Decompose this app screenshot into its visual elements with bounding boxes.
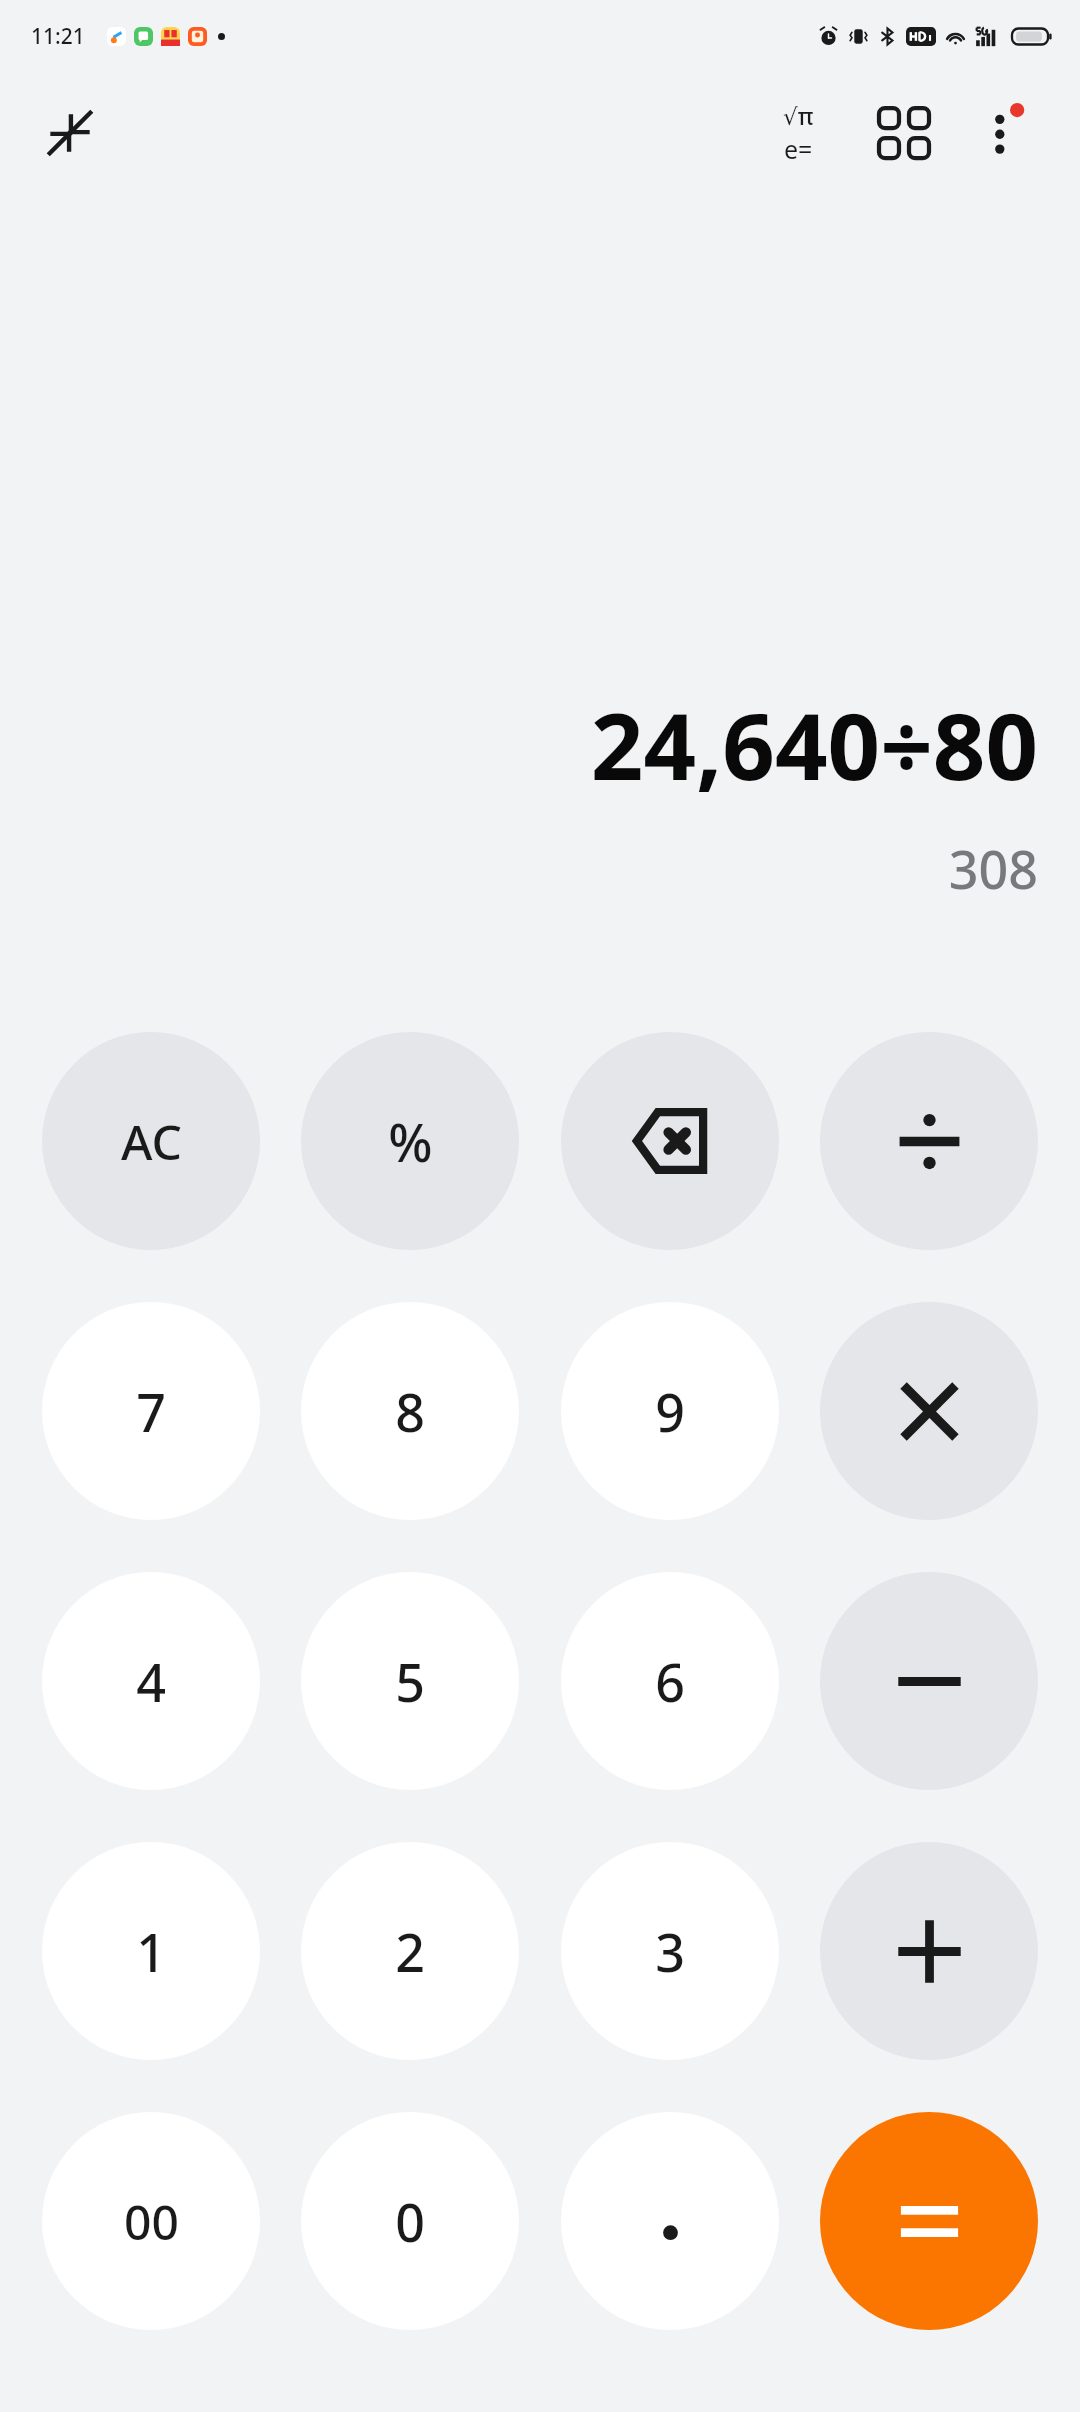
staticText: 11:21 <box>31 22 85 51</box>
staticText: e= <box>784 132 813 166</box>
staticText: √π <box>783 100 814 131</box>
staticText: 5 <box>395 1646 425 1717</box>
staticText: 3 <box>655 1916 685 1987</box>
button[interactable]: 4 <box>42 1572 260 1790</box>
button[interactable]: 5 <box>301 1572 519 1790</box>
button[interactable]: 2 <box>301 1842 519 2060</box>
button[interactable]: Subtract <box>820 1572 1038 1790</box>
button[interactable]: Divide <box>820 1032 1038 1250</box>
button[interactable]: 0 <box>301 2112 519 2330</box>
staticText: % <box>388 1106 433 1177</box>
staticText: 2 <box>395 1916 425 1987</box>
button[interactable]: AC <box>42 1032 260 1250</box>
staticText: 1 <box>136 1916 166 1987</box>
staticText: 0 <box>395 2186 425 2257</box>
button[interactable]: 8 <box>301 1302 519 1520</box>
button[interactable]: 7 <box>42 1302 260 1520</box>
button[interactable]: % <box>301 1032 519 1250</box>
button[interactable]: 00 <box>42 2112 260 2330</box>
button[interactable]: 6 <box>561 1572 779 1790</box>
staticText: 6 <box>655 1646 685 1717</box>
button[interactable]: 1 <box>42 1842 260 2060</box>
button[interactable]: Collapse <box>24 87 116 179</box>
button[interactable]: Decimal point <box>561 2112 779 2330</box>
button[interactable]: Add <box>820 1842 1038 2060</box>
button[interactable]: More options <box>958 85 1054 181</box>
staticText: 8 <box>395 1376 425 1447</box>
staticText: 9 <box>655 1376 685 1447</box>
button[interactable]: Multiply <box>820 1302 1038 1520</box>
button[interactable]: Backspace <box>561 1032 779 1250</box>
button[interactable]: Equals <box>820 2112 1038 2330</box>
button[interactable]: 3 <box>561 1842 779 2060</box>
button[interactable]: Unit converter <box>856 85 952 181</box>
button[interactable]: Scientific mode <box>750 85 846 181</box>
button[interactable]: 9 <box>561 1302 779 1520</box>
staticText: 4 <box>136 1646 166 1717</box>
staticText: 308 <box>948 833 1038 904</box>
staticText: AC <box>121 1109 182 1174</box>
staticText: 7 <box>136 1376 166 1447</box>
staticText: 24,640÷80 <box>590 682 1038 807</box>
staticText: 00 <box>124 2189 179 2254</box>
